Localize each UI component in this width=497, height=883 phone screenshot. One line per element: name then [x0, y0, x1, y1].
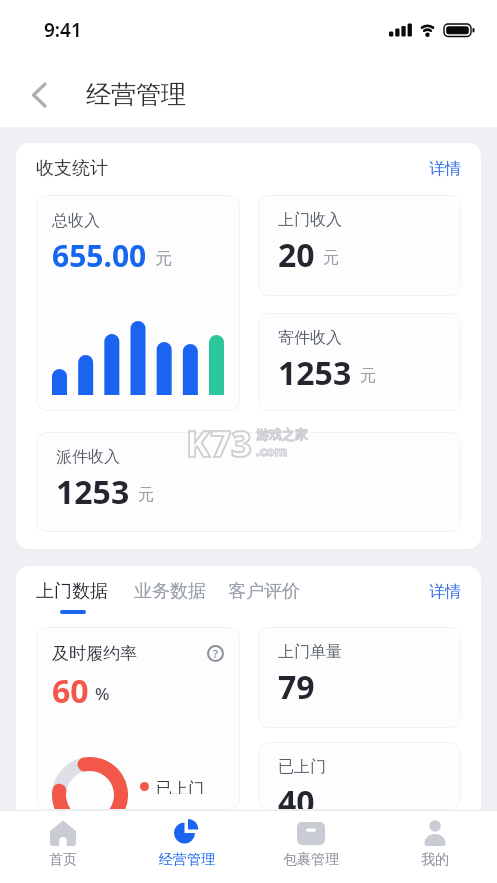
staticText: 经营管理 [86, 79, 186, 110]
button[interactable]: 上门数据 [36, 580, 108, 603]
button[interactable]: 客户评价 [228, 580, 300, 603]
staticText: 79 [278, 665, 315, 709]
staticText: 收支统计 [36, 157, 108, 180]
staticText: 及时履约率 [52, 643, 137, 664]
button[interactable]: 经营管理 [125, 811, 249, 883]
staticText: 我的 [421, 851, 449, 869]
staticText: 总收入 [52, 211, 100, 231]
staticText: 60 [52, 669, 89, 713]
staticText: .com [256, 442, 288, 460]
staticText: 元 [323, 248, 339, 268]
staticText: 经营管理 [159, 851, 215, 869]
button[interactable]: 我的 [373, 811, 497, 883]
staticText: 655.00 [52, 235, 147, 276]
staticText: 首页 [49, 851, 77, 869]
staticText: % [95, 682, 110, 705]
staticText: 1253 [278, 351, 352, 395]
button[interactable]: 总收入 [36, 195, 240, 411]
staticText: 派件收入 [56, 447, 120, 467]
staticText: 元 [138, 485, 154, 505]
staticText: 9:41 [44, 17, 82, 43]
staticText: ? [213, 646, 218, 661]
staticText: 已上门 [156, 779, 204, 794]
staticText: 20 [278, 233, 315, 277]
button[interactable]: 及时履约率 [36, 627, 240, 810]
staticText: 寄件收入 [278, 328, 342, 348]
button[interactable]: 寄件收入 [258, 313, 461, 411]
button[interactable]: 上门收入 [258, 195, 461, 296]
button[interactable]: 上门单量 [258, 627, 461, 728]
button[interactable]: 首页 [0, 811, 125, 883]
staticText: 上门收入 [278, 210, 342, 230]
staticText: 元 [360, 366, 376, 386]
staticText: 包裹管理 [283, 851, 339, 869]
staticText: 已上门 [278, 757, 326, 777]
button[interactable]: 详情 [429, 582, 461, 602]
button[interactable]: 已上门 [258, 742, 461, 810]
staticText: 1253 [56, 470, 130, 514]
staticText: K73 [186, 419, 252, 468]
button[interactable] [31, 82, 47, 108]
button[interactable]: 派件收入 [36, 432, 461, 532]
button[interactable]: 包裹管理 [249, 811, 373, 883]
staticText: 游戏之家 [256, 426, 308, 442]
button[interactable]: 业务数据 [134, 580, 206, 603]
button[interactable]: 详情 [429, 159, 461, 179]
staticText: 上门单量 [278, 642, 342, 662]
staticText: 40 [278, 780, 315, 810]
staticText: 元 [155, 248, 172, 269]
